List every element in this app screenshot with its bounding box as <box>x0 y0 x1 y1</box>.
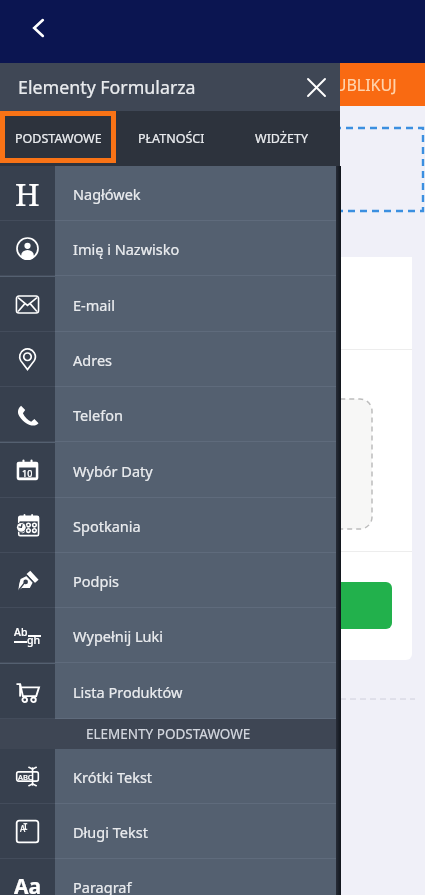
staticText: 10 <box>22 467 33 479</box>
button[interactable]: E-mail <box>0 277 336 332</box>
button[interactable]: H <box>0 166 336 221</box>
button[interactable]: Podpis <box>0 553 336 608</box>
staticText: E-mail <box>73 295 115 315</box>
button[interactable]: Imię i Nazwisko <box>0 221 336 276</box>
staticText: WIDŻETY <box>255 130 308 147</box>
button[interactable]: WIDŻETY <box>226 111 337 166</box>
staticText: ABC <box>18 772 33 782</box>
staticText: Nagłówek <box>73 184 141 204</box>
staticText: Krótki Tekst <box>73 767 153 787</box>
staticText: Elementy Formularza <box>18 75 196 99</box>
staticText: Paragraf <box>73 877 132 895</box>
staticText: Wypełnij Luki <box>73 626 163 646</box>
staticText: gh <box>27 633 41 647</box>
staticText: PŁATNOŚCI <box>138 130 205 147</box>
staticText: Lista Produktów <box>73 682 183 702</box>
button[interactable]: Lista Produktów <box>0 664 336 719</box>
button[interactable]: Back <box>15 4 63 52</box>
staticText: Podpis <box>73 571 120 591</box>
button[interactable]: Adres <box>0 332 336 387</box>
button[interactable]: ABC <box>0 749 336 804</box>
staticText: PODSTAWOWE <box>15 130 102 147</box>
button[interactable]: A <box>0 804 336 859</box>
staticText: H <box>15 173 40 215</box>
staticText: Długi Tekst <box>73 822 148 842</box>
staticText: Imię i Nazwisko <box>73 239 180 259</box>
button[interactable] <box>250 582 392 629</box>
button[interactable]: PODSTAWOWE <box>0 111 116 166</box>
button[interactable]: Telefon <box>0 387 336 442</box>
staticText: Adres <box>73 350 113 370</box>
staticText: PUBLIKUJ <box>325 74 397 96</box>
button[interactable]: Close <box>295 66 337 108</box>
button[interactable]: Spotkania <box>0 498 336 553</box>
staticText: Wybór Daty <box>73 461 153 481</box>
button[interactable]: Ab <box>0 608 336 663</box>
staticText: A <box>20 823 26 834</box>
staticText: Spotkania <box>73 516 141 536</box>
button[interactable]: 10 <box>0 443 336 498</box>
staticText: ELEMENTY PODSTAWOWE <box>86 725 251 743</box>
staticText: Telefon <box>73 405 123 425</box>
staticText: Aa <box>14 872 42 895</box>
button[interactable]: PŁATNOŚCI <box>116 111 226 166</box>
button[interactable]: Aa <box>0 859 336 895</box>
staticText: Ab <box>14 625 28 639</box>
